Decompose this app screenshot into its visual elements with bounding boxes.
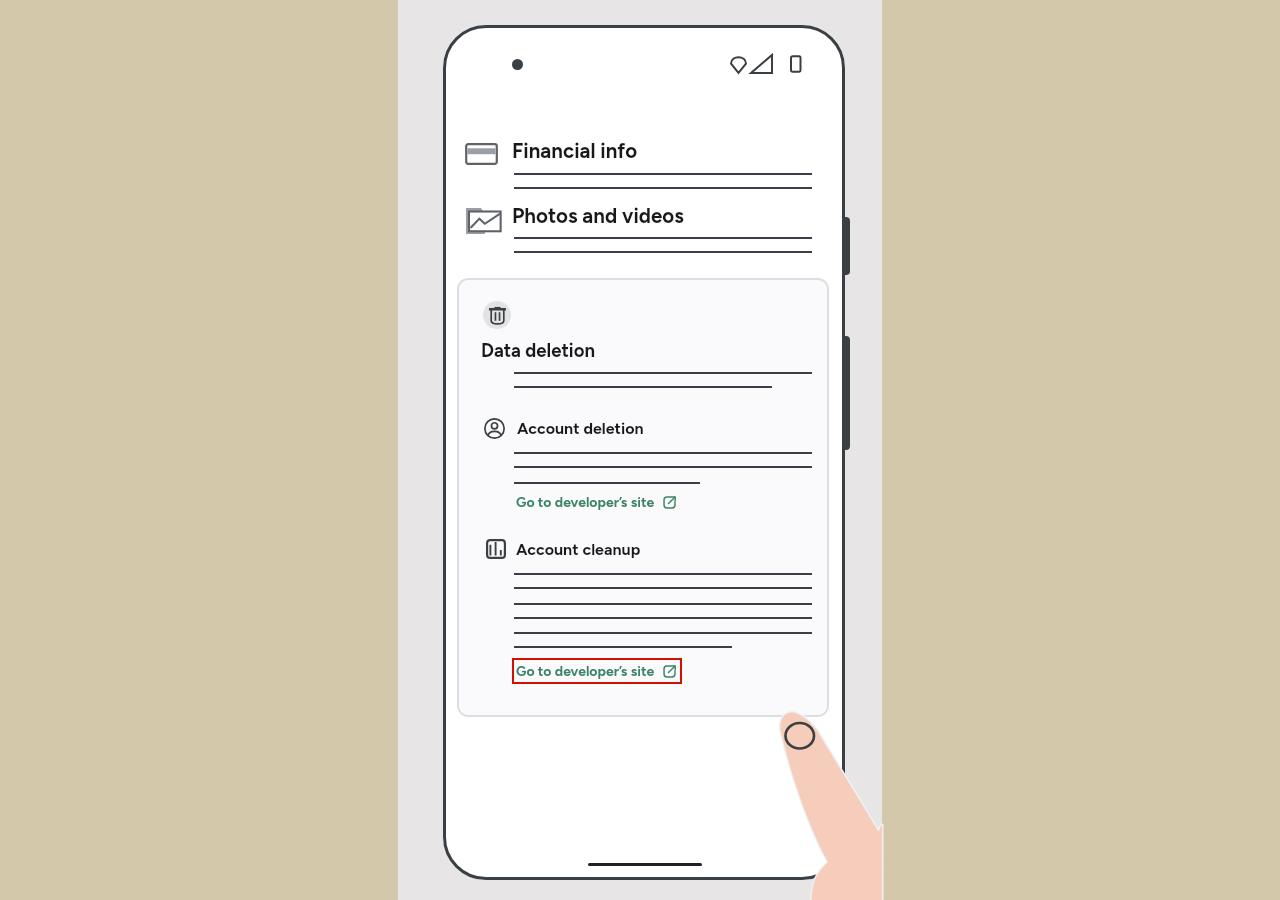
staticText: Data deletion bbox=[481, 339, 595, 361]
other: Wi-Fi, signal and battery status bbox=[730, 55, 801, 73]
other: Opens in a new window bbox=[663, 665, 676, 678]
button[interactable]: Data deletion bbox=[483, 301, 511, 329]
staticText: Go to developer’s site bbox=[516, 494, 655, 511]
other: Opens in a new window bbox=[663, 496, 676, 509]
button[interactable]: Photos and videos bbox=[460, 198, 816, 260]
button[interactable]: Account cleanup bbox=[480, 534, 816, 564]
other: Front camera bbox=[512, 59, 523, 70]
button[interactable]: Financial info bbox=[460, 133, 816, 195]
staticText: Account cleanup bbox=[516, 540, 641, 559]
button[interactable]: Go to developer’s site bbox=[512, 658, 682, 684]
staticText: Go to developer’s site bbox=[516, 663, 655, 680]
staticText: Account deletion bbox=[517, 419, 644, 438]
staticText: Photos and videos bbox=[512, 204, 684, 229]
staticText: Financial info bbox=[512, 139, 638, 164]
button[interactable]: Account deletion bbox=[480, 413, 816, 443]
button[interactable]: Go to developer’s site bbox=[512, 489, 682, 515]
